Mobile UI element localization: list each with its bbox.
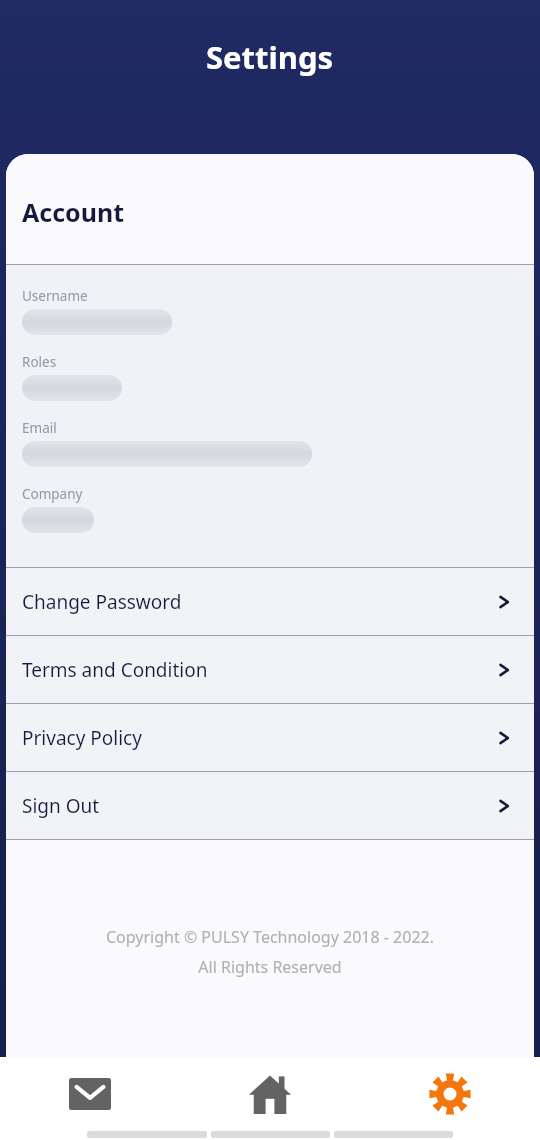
staticText: Change Password (22, 589, 182, 615)
staticText: Settings (206, 36, 334, 78)
button[interactable]: Mail (0, 1057, 180, 1131)
staticText: Terms and Condition (22, 657, 208, 683)
staticText: Company (22, 485, 83, 503)
staticText: Privacy Policy (22, 725, 142, 751)
staticText: Sign Out (22, 793, 100, 819)
button[interactable]: Terms and Condition (6, 636, 534, 703)
staticText: All Rights Reserved (198, 956, 342, 978)
staticText: Account (22, 195, 125, 229)
button[interactable]: Home (180, 1057, 360, 1131)
button[interactable]: Privacy Policy (6, 704, 534, 771)
button[interactable]: Settings (360, 1057, 540, 1131)
staticText: Copyright © PULSY Technology 2018 - 2022… (106, 926, 434, 948)
staticText: Roles (22, 353, 57, 371)
button[interactable]: Change Password (6, 568, 534, 635)
staticText: Username (22, 287, 88, 305)
button[interactable]: Sign Out (6, 772, 534, 839)
staticText: Email (22, 419, 57, 437)
